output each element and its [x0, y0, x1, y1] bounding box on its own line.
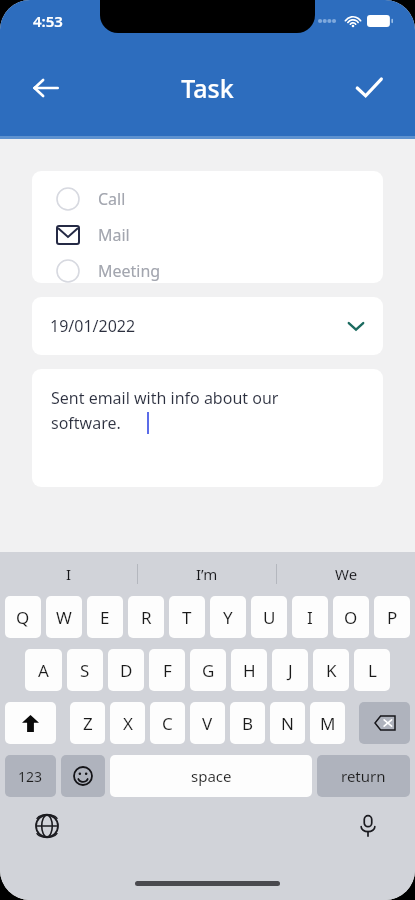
button[interactable]: V [190, 702, 225, 744]
button[interactable]: A [25, 649, 62, 691]
button[interactable]: R [128, 596, 164, 638]
staticText: I’m [196, 564, 218, 584]
button[interactable]: Change keyboard [30, 809, 64, 843]
button[interactable]: N [270, 702, 305, 744]
button[interactable]: J [272, 649, 308, 691]
staticText: K [326, 659, 337, 682]
staticText: S [80, 659, 90, 682]
button[interactable]: E [87, 596, 123, 638]
button[interactable]: D [108, 649, 144, 691]
button[interactable]: I [0, 552, 137, 596]
button[interactable]: return [317, 755, 410, 797]
staticText: B [242, 712, 254, 735]
button[interactable]: space [110, 755, 312, 797]
button[interactable]: Mail [56, 223, 383, 247]
button[interactable]: U [251, 596, 287, 638]
button[interactable]: Call [56, 187, 383, 211]
staticText: R [141, 606, 152, 629]
button[interactable]: H [231, 649, 267, 691]
button[interactable]: C [150, 702, 185, 744]
staticText: I [307, 606, 313, 629]
staticText: U [263, 606, 276, 629]
button[interactable]: Backspace [359, 702, 410, 744]
staticText: space [191, 766, 232, 786]
button[interactable]: K [313, 649, 349, 691]
button[interactable]: F [149, 649, 185, 691]
staticText: Q [16, 606, 30, 629]
button[interactable]: O [333, 596, 369, 638]
staticText: Sent email with info about our software. [51, 387, 279, 433]
button[interactable]: W [46, 596, 82, 638]
staticText: I [66, 564, 72, 584]
staticText: X [123, 712, 133, 735]
staticText: W [56, 606, 72, 629]
button[interactable]: T [169, 596, 205, 638]
button[interactable]: Save [345, 64, 393, 112]
button[interactable]: Q [5, 596, 41, 638]
staticText: return [341, 766, 386, 786]
staticText: L [368, 659, 377, 682]
staticText: Y [223, 606, 233, 629]
staticText: A [38, 659, 49, 682]
staticText: E [100, 606, 110, 629]
button[interactable]: Shift [5, 702, 56, 744]
staticText: J [288, 659, 293, 682]
staticText: 19/01/2022 [50, 315, 136, 337]
staticText: O [344, 606, 358, 629]
button[interactable]: Meeting [56, 259, 383, 283]
button[interactable]: 123 [5, 755, 56, 797]
button[interactable]: Dictate [351, 809, 385, 843]
staticText: Call [98, 188, 126, 210]
button[interactable]: M [310, 702, 345, 744]
staticText: Mail [98, 224, 130, 246]
staticText: N [281, 712, 294, 735]
button[interactable]: G [190, 649, 226, 691]
button[interactable]: We [277, 552, 415, 596]
button[interactable]: S [67, 649, 103, 691]
staticText: C [162, 712, 173, 735]
staticText: V [202, 712, 213, 735]
button[interactable]: X [110, 702, 145, 744]
button[interactable]: I’m [138, 552, 276, 596]
button[interactable]: I [292, 596, 328, 638]
button[interactable]: Emoji [61, 755, 105, 797]
staticText: 123 [18, 767, 43, 786]
staticText: M [320, 712, 336, 735]
button[interactable]: L [354, 649, 390, 691]
button[interactable]: Y [210, 596, 246, 638]
staticText: F [163, 659, 172, 682]
staticText: Task [181, 71, 234, 105]
button[interactable]: P [374, 596, 410, 638]
staticText: Z [83, 712, 93, 735]
staticText: Meeting [98, 260, 161, 282]
staticText: D [120, 659, 133, 682]
button[interactable]: Z [70, 702, 105, 744]
button[interactable]: Back [22, 64, 70, 112]
button[interactable]: B [230, 702, 265, 744]
staticText: H [243, 659, 256, 682]
staticText: 4:53 [33, 11, 63, 31]
button[interactable]: 19/01/2022 [50, 297, 365, 355]
staticText: P [387, 606, 398, 629]
staticText: G [202, 659, 215, 682]
button[interactable]: Sent email with info about our software. [51, 387, 383, 487]
staticText: We [335, 564, 358, 584]
staticText: T [182, 606, 192, 629]
